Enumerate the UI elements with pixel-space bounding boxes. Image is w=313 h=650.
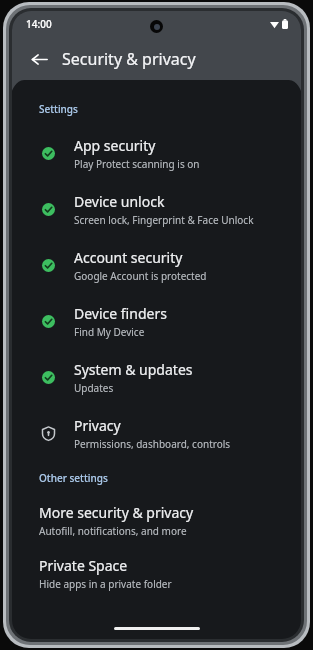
staticText: Other settings: [39, 471, 108, 485]
button[interactable]: Privacy: [12, 405, 301, 461]
staticText: Google Account is protected: [74, 269, 207, 283]
staticText: Hide apps in a private folder: [39, 577, 172, 591]
staticText: More security & privacy: [39, 503, 194, 522]
staticText: Updates: [74, 381, 114, 395]
button[interactable]: Account security: [12, 237, 301, 293]
staticText: Screen lock, Fingerprint & Face Unlock: [74, 213, 254, 227]
staticText: Device unlock: [74, 192, 165, 211]
button[interactable]: Private Space: [12, 547, 301, 600]
staticText: Play Protect scanning is on: [74, 157, 200, 171]
button[interactable]: App security: [12, 125, 301, 181]
button[interactable]: Device finders: [12, 293, 301, 349]
staticText: Autofill, notifications, and more: [39, 524, 187, 538]
button[interactable]: Device unlock: [12, 181, 301, 237]
staticText: Security & privacy: [62, 48, 196, 70]
staticText: Private Space: [39, 556, 128, 575]
button[interactable]: Back: [22, 42, 56, 76]
button[interactable]: More security & privacy: [12, 494, 301, 547]
staticText: Permissions, dashboard, controls: [74, 437, 231, 451]
staticText: App security: [74, 136, 156, 155]
staticText: Find My Device: [74, 325, 145, 339]
staticText: 14:00: [26, 17, 52, 31]
button[interactable]: System & updates: [12, 349, 301, 405]
staticText: Account security: [74, 248, 183, 267]
staticText: Privacy: [74, 416, 121, 435]
staticText: Device finders: [74, 304, 167, 323]
staticText: System & updates: [74, 360, 193, 379]
staticText: Settings: [39, 102, 78, 116]
